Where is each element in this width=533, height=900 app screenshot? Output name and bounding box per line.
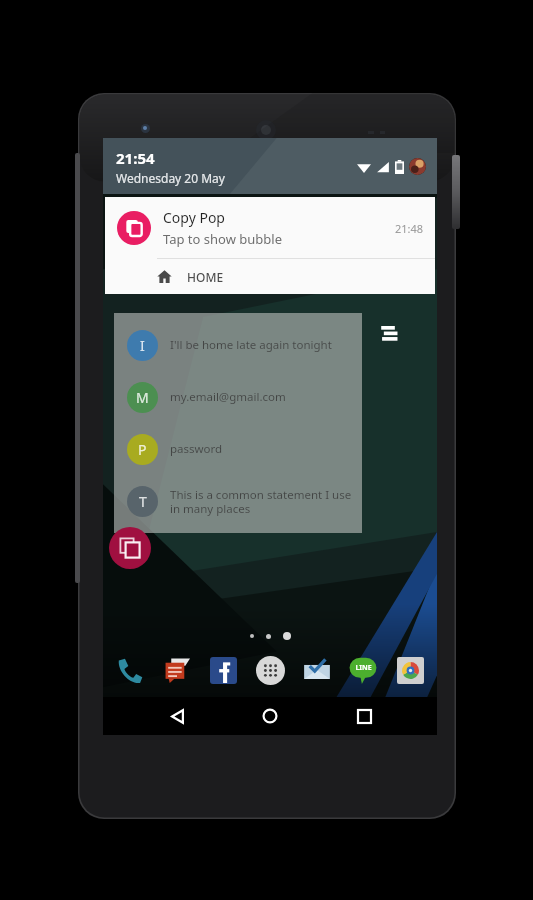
staticText: I'll be home late again tonight xyxy=(170,337,332,353)
button[interactable]: M xyxy=(114,371,362,423)
button[interactable]: Chrome xyxy=(390,650,430,690)
staticText: I xyxy=(140,336,145,355)
staticText: 21:54 xyxy=(116,148,155,168)
staticText: Wednesday 20 May xyxy=(116,170,225,186)
button[interactable]: Copy Pop bubble xyxy=(109,527,151,569)
button[interactable]: Phone xyxy=(110,650,150,690)
staticText: This is a common statement I use in many… xyxy=(170,487,352,516)
staticText: password xyxy=(170,441,223,457)
button[interactable]: Clipboard list xyxy=(376,320,404,348)
button[interactable]: Email xyxy=(297,650,337,690)
button[interactable]: Recent apps xyxy=(344,697,384,735)
button[interactable]: Messaging xyxy=(157,650,197,690)
staticText: T xyxy=(139,492,147,511)
staticText: Tap to show bubble xyxy=(163,230,282,248)
staticText: my.email@gmail.com xyxy=(170,389,286,405)
staticText: 21:48 xyxy=(395,221,424,236)
button[interactable]: T xyxy=(114,475,362,527)
button[interactable]: Home xyxy=(250,697,290,735)
button[interactable]: Copy Pop xyxy=(105,197,435,294)
button[interactable]: User profile xyxy=(409,158,426,175)
staticText: Copy Pop xyxy=(163,208,225,227)
button[interactable]: Facebook xyxy=(203,650,243,690)
button[interactable]: I xyxy=(114,319,362,371)
staticText: HOME xyxy=(187,269,224,285)
staticText: LINE xyxy=(355,663,372,673)
button[interactable]: LINE xyxy=(343,650,383,690)
staticText: P xyxy=(138,440,147,459)
button[interactable]: Apps xyxy=(250,650,290,690)
button[interactable]: Back xyxy=(157,697,197,735)
staticText: M xyxy=(136,388,149,407)
button[interactable]: P xyxy=(114,423,362,475)
button[interactable]: HOME xyxy=(105,259,435,294)
